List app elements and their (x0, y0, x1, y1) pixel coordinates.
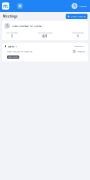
staticText: Initiated by : 1 (74, 45, 85, 47)
staticText: m. (3, 3, 8, 9)
staticText: Create Meeting (70, 15, 85, 18)
staticText: Your Meetings (6, 31, 18, 34)
staticText: 1 (77, 34, 79, 38)
staticText: Subject 1 (7, 45, 16, 48)
staticText: ASSET Evaluation Meeting (7, 50, 32, 53)
button[interactable]: Create Meeting (66, 14, 87, 19)
staticText: 1 (11, 34, 13, 38)
staticText: Good Afternoon, Sri Harsha (12, 24, 41, 27)
staticText: Overdue Meetings (37, 31, 52, 34)
staticText: Sri Harsha (77, 50, 85, 53)
button[interactable]: Apps (9, 3, 23, 9)
staticText: Harsha (79, 4, 86, 8)
button[interactable]: Harsha (71, 3, 90, 9)
staticText: Total Meetings (72, 31, 84, 34)
staticText: Meetings (3, 15, 17, 18)
button[interactable]: Subject 1 (2, 43, 88, 61)
staticText: Join Meeting (9, 56, 18, 58)
staticText: 0/1 (42, 34, 47, 38)
button[interactable]: Home (0, 2, 9, 10)
